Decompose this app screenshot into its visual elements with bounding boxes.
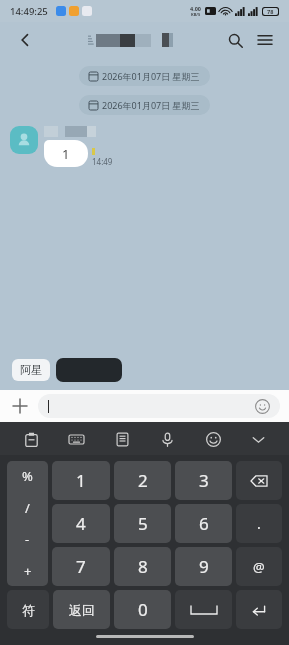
- button[interactable]: Hide keyboard: [243, 424, 273, 454]
- button[interactable]: Add: [9, 395, 31, 417]
- button[interactable]: 0: [114, 590, 171, 629]
- other: Emoji: [255, 399, 270, 414]
- staticText: 符: [22, 602, 35, 618]
- staticText: @: [253, 558, 265, 576]
- button[interactable]: 4: [52, 504, 110, 543]
- button[interactable]: 2026年01月07日 星期三: [79, 66, 210, 86]
- staticText: 0: [138, 598, 148, 621]
- staticText: 4.00: [190, 5, 201, 12]
- staticText: KB/S: [191, 12, 201, 17]
- staticText: 2: [138, 469, 148, 492]
- button[interactable]: Keyboard: [61, 424, 91, 454]
- button[interactable]: 5: [114, 504, 171, 543]
- button[interactable]: 7: [52, 547, 110, 586]
- staticText: 4: [76, 512, 86, 535]
- button[interactable]: Search: [223, 28, 247, 52]
- staticText: 7: [76, 555, 86, 578]
- button[interactable]: Menu: [253, 28, 277, 52]
- staticText: 9: [199, 555, 209, 578]
- button[interactable]: 2: [114, 461, 171, 500]
- button[interactable]: Emoji: [198, 424, 228, 454]
- button[interactable]: .: [236, 504, 282, 543]
- button[interactable]: Backspace: [236, 461, 282, 500]
- button[interactable]: Enter: [236, 590, 282, 629]
- button[interactable]: Notes: [107, 424, 137, 454]
- button[interactable]: %: [7, 461, 48, 586]
- staticText: 2026年01月07日 星期三: [102, 99, 200, 111]
- button[interactable]: 返回: [53, 590, 110, 629]
- staticText: 1: [62, 145, 70, 163]
- button[interactable]: 6: [175, 504, 232, 543]
- staticText: 3: [199, 469, 209, 492]
- button[interactable]: 1: [44, 140, 88, 167]
- button[interactable]: Avatar: [10, 126, 38, 154]
- staticText: 6: [199, 512, 209, 535]
- staticText: /: [25, 499, 30, 517]
- staticText: 14:49:25: [10, 5, 48, 18]
- button[interactable]: @: [236, 547, 282, 586]
- button[interactable]: Emoji: [38, 394, 280, 418]
- button[interactable]: 1: [52, 461, 110, 500]
- button[interactable]: Message: [56, 358, 122, 382]
- staticText: 返回: [69, 602, 95, 618]
- staticText: +: [24, 562, 32, 580]
- staticText: 阿星: [20, 363, 42, 377]
- button[interactable]: 阿星: [12, 359, 50, 381]
- button[interactable]: 9: [175, 547, 232, 586]
- button[interactable]: Space: [175, 590, 232, 629]
- staticText: 8: [138, 555, 148, 578]
- staticText: 1: [76, 469, 86, 492]
- staticText: 78: [267, 8, 274, 15]
- staticText: 5: [138, 512, 148, 535]
- button[interactable]: 2026年01月07日 星期三: [79, 95, 210, 115]
- button[interactable]: 8: [114, 547, 171, 586]
- staticText: 2026年01月07日 星期三: [102, 70, 200, 82]
- button[interactable]: 3: [175, 461, 232, 500]
- button[interactable]: Clipboard: [16, 424, 46, 454]
- button[interactable]: Back: [12, 27, 38, 53]
- staticText: -: [25, 530, 30, 548]
- button[interactable]: Voice input: [152, 424, 182, 454]
- staticText: 14:49: [92, 156, 113, 167]
- staticText: %: [22, 467, 33, 485]
- staticText: .: [257, 514, 261, 533]
- button[interactable]: 符: [7, 590, 49, 629]
